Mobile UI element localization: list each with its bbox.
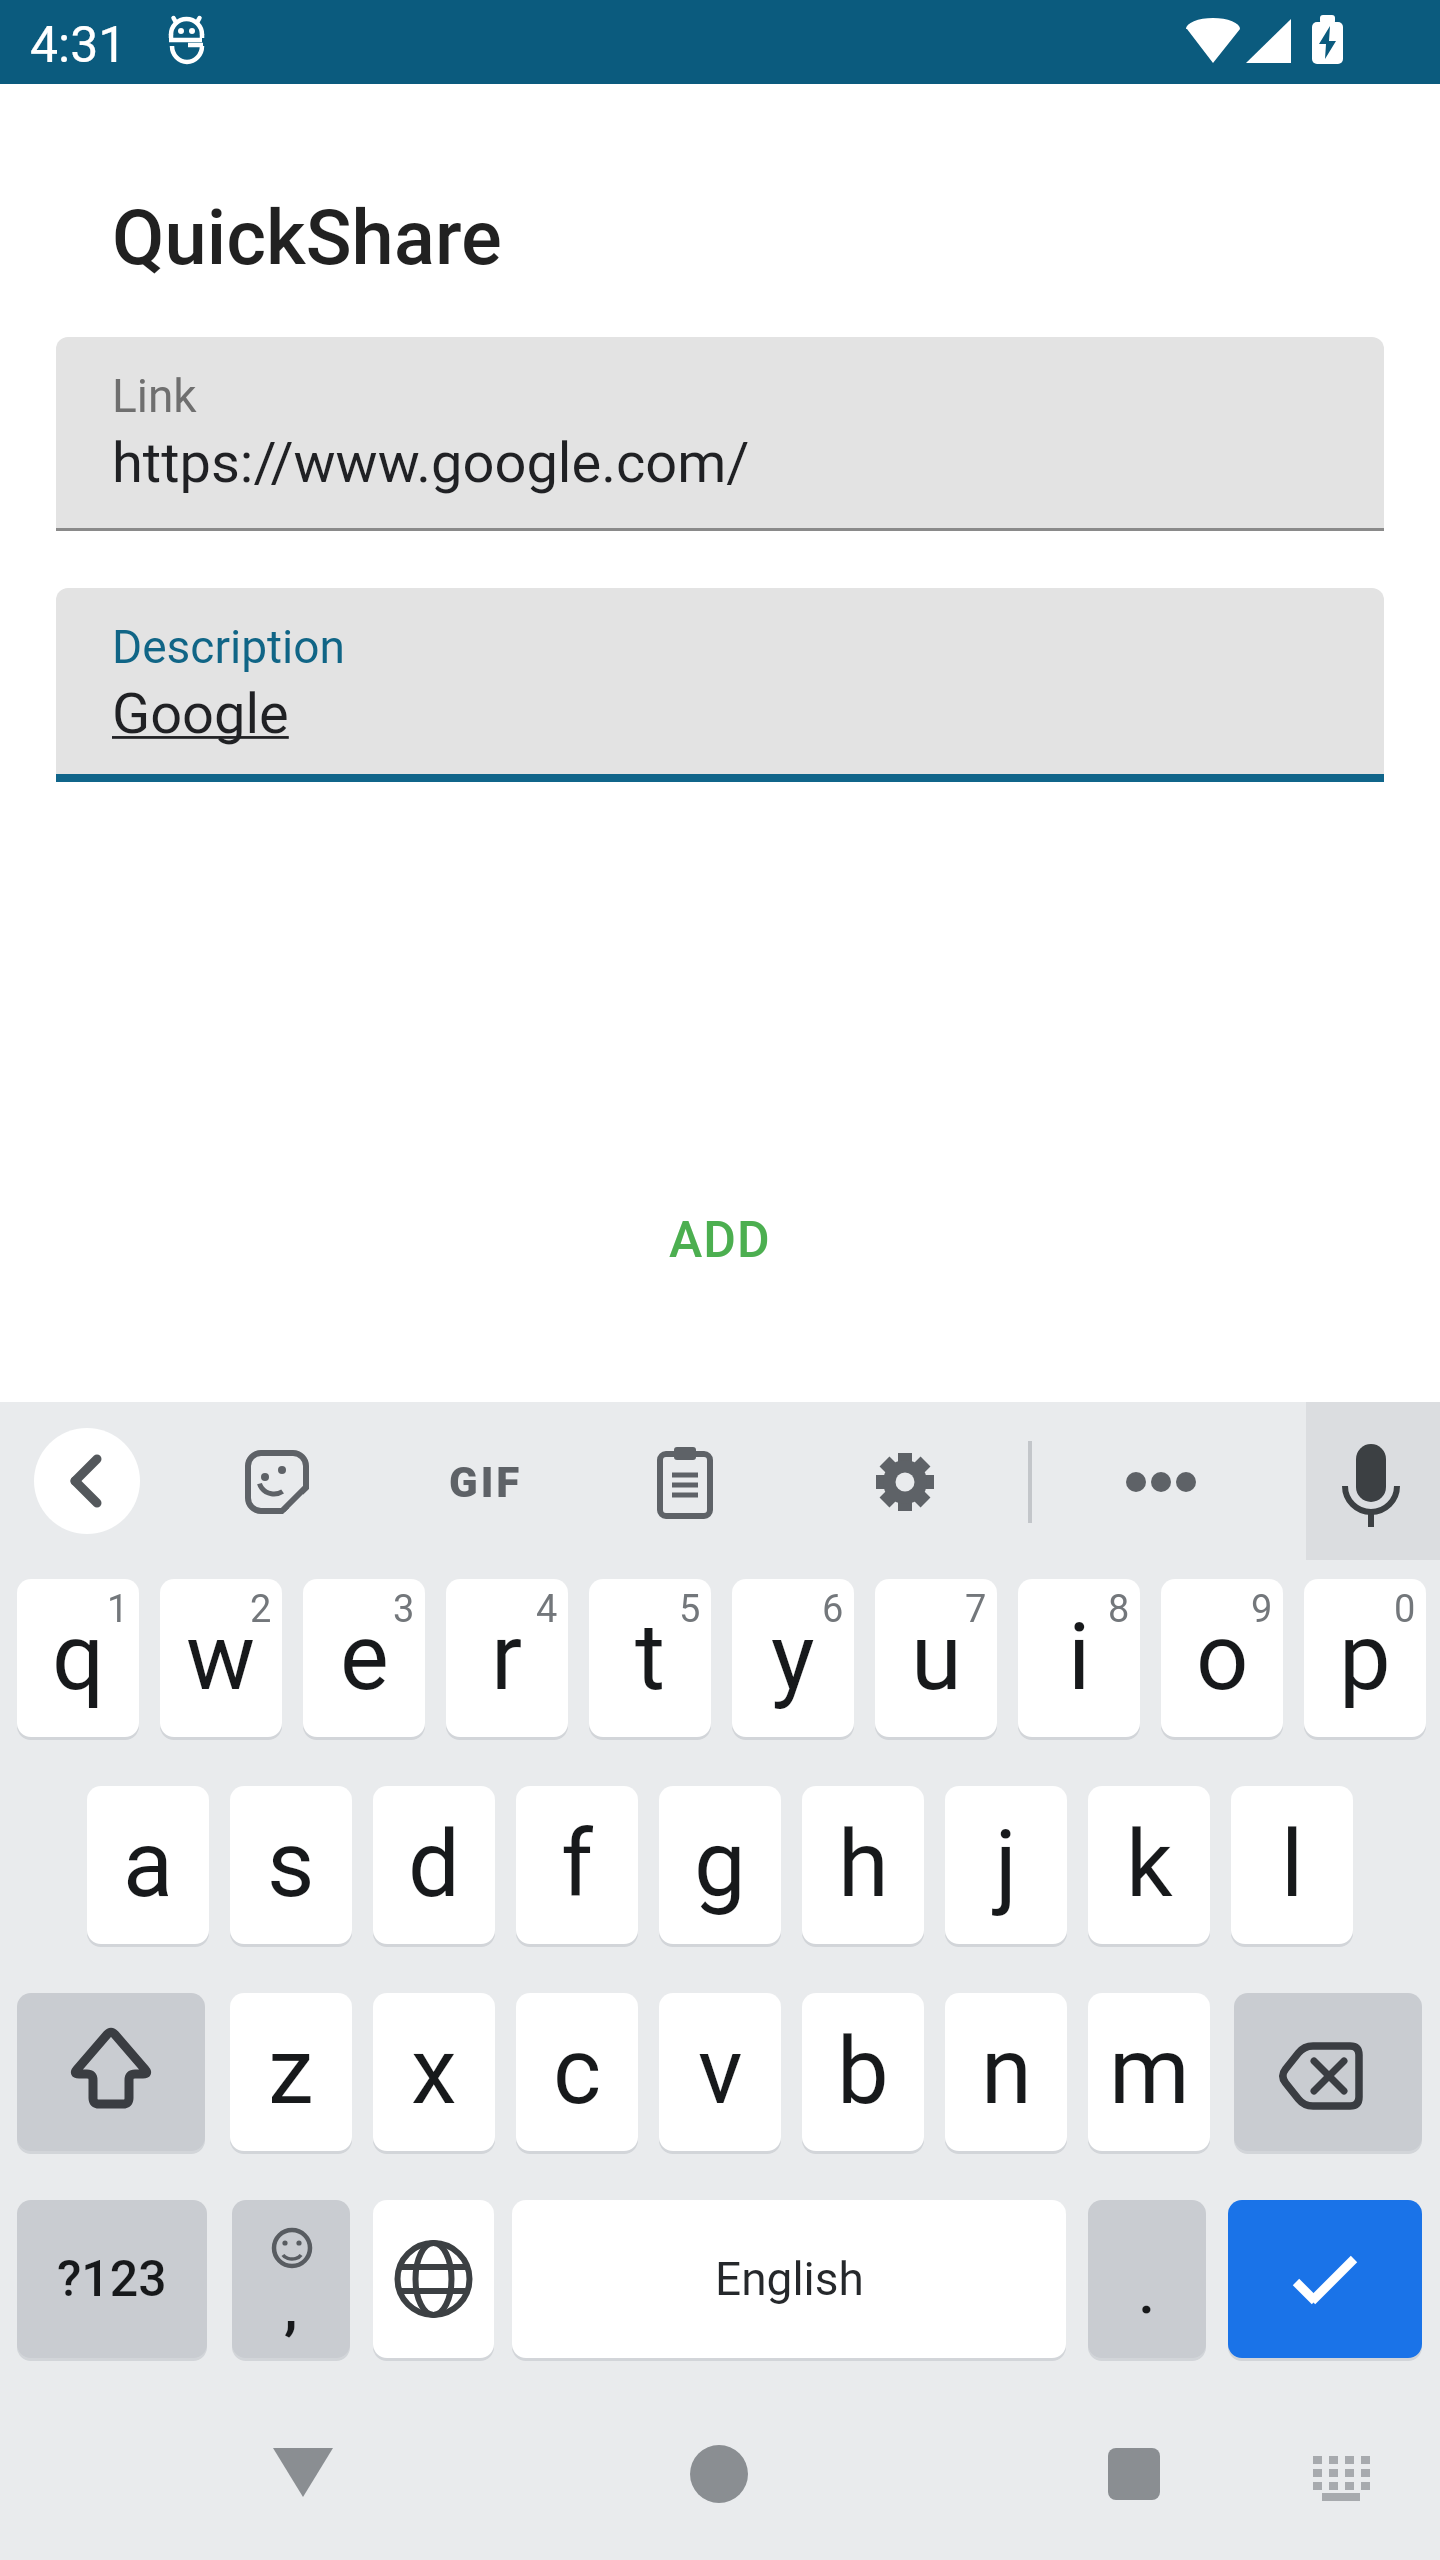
button[interactable]: x [373, 1993, 495, 2151]
staticText: b [837, 2018, 889, 2126]
staticText: i [1068, 1604, 1091, 1712]
staticText: h [838, 1811, 889, 1919]
staticText: q [52, 1604, 105, 1712]
button[interactable]: s [230, 1786, 352, 1944]
button[interactable] [227, 1432, 327, 1532]
button[interactable]: m [1088, 1993, 1210, 2151]
staticText: 7 [965, 1587, 987, 1632]
button[interactable]: r [446, 1579, 568, 1737]
staticText: . [1139, 2265, 1155, 2326]
staticText: https://www.google.com/ [112, 430, 750, 496]
button[interactable]: y [732, 1579, 854, 1737]
staticText: r [491, 1604, 523, 1712]
staticText: l [1281, 1811, 1304, 1919]
button[interactable]: n [945, 1993, 1067, 2151]
staticText: 5 [679, 1587, 701, 1632]
staticText: u [911, 1604, 962, 1712]
staticText: k [1126, 1811, 1173, 1919]
button[interactable]: k [1088, 1786, 1210, 1944]
button[interactable]: v [659, 1993, 781, 2151]
button[interactable] [659, 2418, 779, 2538]
button[interactable] [17, 1993, 205, 2151]
staticText: z [268, 2018, 314, 2126]
staticText: w [186, 1604, 256, 1712]
staticText: s [267, 1811, 315, 1919]
button[interactable]: e [303, 1579, 425, 1737]
button[interactable]: z [230, 1993, 352, 2151]
staticText: x [411, 2018, 457, 2126]
staticText: y [771, 1604, 815, 1712]
button[interactable]: i [1018, 1579, 1140, 1737]
button[interactable] [855, 1432, 955, 1532]
button[interactable] [1228, 2200, 1422, 2358]
staticText: 8 [1108, 1587, 1130, 1632]
button[interactable] [1074, 2418, 1194, 2538]
button[interactable]: d [373, 1786, 495, 1944]
button[interactable]: a [87, 1786, 209, 1944]
button[interactable] [1306, 1402, 1440, 1560]
staticText: 0 [1394, 1587, 1416, 1632]
staticText: d [408, 1811, 460, 1919]
button[interactable]: l [1231, 1786, 1353, 1944]
staticText: j [995, 1811, 1018, 1919]
staticText: g [694, 1811, 746, 1919]
staticText: 4:31 [30, 16, 127, 75]
staticText: 1 [107, 1587, 129, 1632]
button[interactable] [1234, 1993, 1422, 2151]
staticText: Google [112, 681, 289, 747]
staticText: c [553, 2018, 602, 2126]
button[interactable]: English [512, 2200, 1066, 2358]
staticText: 6 [822, 1587, 844, 1632]
staticText: ADD [669, 1211, 771, 1270]
staticText: 9 [1251, 1587, 1273, 1632]
staticText: f [561, 1811, 593, 1919]
button[interactable]: g [659, 1786, 781, 1944]
staticText: t [635, 1604, 666, 1712]
staticText: 3 [393, 1587, 415, 1632]
button[interactable] [635, 1432, 735, 1532]
button[interactable]: f [516, 1786, 638, 1944]
staticText: n [981, 2018, 1032, 2126]
button[interactable]: , [232, 2200, 350, 2358]
button[interactable]: t [589, 1579, 711, 1737]
staticText: a [123, 1811, 174, 1919]
button[interactable]: u [875, 1579, 997, 1737]
staticText: 4 [536, 1587, 558, 1632]
button[interactable]: o [1161, 1579, 1283, 1737]
button[interactable]: Description [56, 588, 1384, 782]
button[interactable] [1111, 1432, 1211, 1532]
staticText: v [698, 2018, 743, 2126]
staticText: GIF [449, 1458, 523, 1507]
staticText: p [1339, 1604, 1391, 1712]
button[interactable]: Link [56, 337, 1384, 531]
button[interactable]: ?123 [17, 2200, 207, 2358]
staticText: m [1109, 2018, 1190, 2126]
staticText: English [715, 2252, 864, 2306]
button[interactable] [34, 1428, 140, 1534]
staticText: Description [112, 620, 345, 674]
staticText: ?123 [57, 2250, 167, 2309]
staticText: o [1196, 1604, 1249, 1712]
button[interactable]: b [802, 1993, 924, 2151]
button[interactable]: GIF [406, 1432, 566, 1532]
button[interactable]: c [516, 1993, 638, 2151]
button[interactable] [373, 2200, 494, 2358]
button[interactable]: w [160, 1579, 282, 1737]
staticText: QuickShare [112, 193, 502, 282]
staticText: 2 [250, 1587, 272, 1632]
button[interactable] [243, 2418, 363, 2538]
button[interactable]: ADD [620, 1185, 820, 1295]
button[interactable]: p [1304, 1579, 1426, 1737]
button[interactable]: . [1088, 2200, 1206, 2358]
button[interactable]: q [17, 1579, 139, 1737]
staticText: , [284, 2276, 298, 2342]
staticText: Link [112, 369, 197, 423]
button[interactable]: h [802, 1786, 924, 1944]
button[interactable]: j [945, 1786, 1067, 1944]
staticText: e [340, 1604, 389, 1712]
